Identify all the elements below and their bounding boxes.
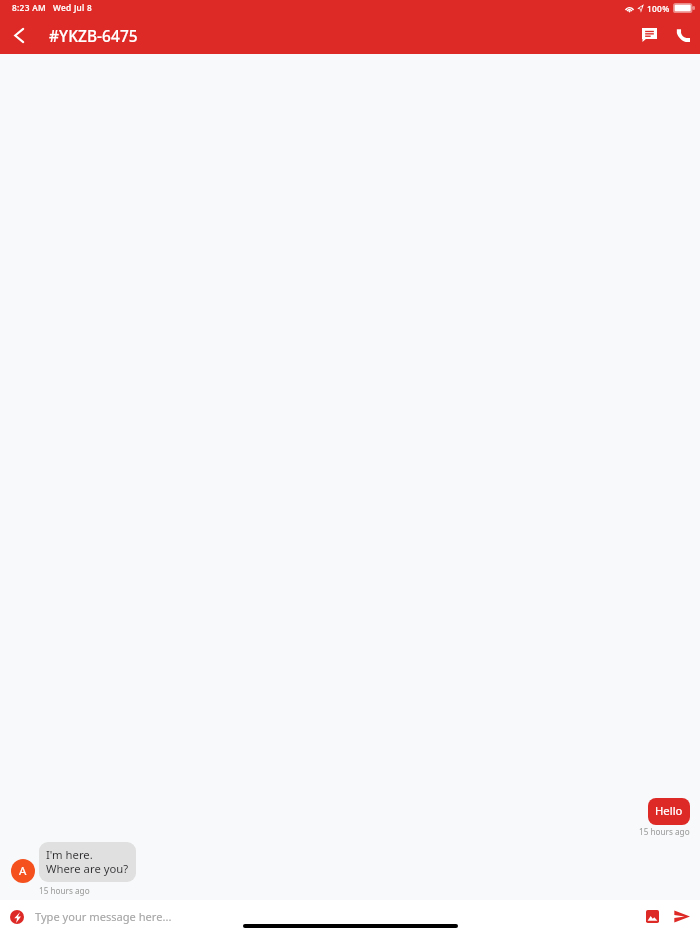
button[interactable]: I'm here. Where are you? — [39, 842, 136, 882]
button[interactable]: Call — [666, 16, 700, 54]
button[interactable]: Hello — [648, 798, 690, 825]
button[interactable]: Attach image — [639, 900, 665, 933]
button[interactable]: Back — [0, 16, 38, 54]
staticText: I'm here. Where are you? — [46, 848, 129, 876]
staticText: A — [19, 863, 27, 879]
button[interactable]: Messages — [632, 16, 666, 54]
staticText: Type your message here... — [35, 909, 172, 924]
button[interactable]: Send — [670, 900, 694, 933]
staticText: 15 hours ago — [639, 828, 690, 837]
staticText: 100% — [647, 3, 670, 14]
staticText: Hello — [655, 806, 683, 818]
button[interactable]: Quick actions — [10, 910, 24, 924]
staticText: 8:23 AM — [12, 2, 46, 13]
staticText: Wed Jul 8 — [53, 2, 93, 13]
staticText: 15 hours ago — [39, 887, 90, 896]
staticText: #YKZB-6475 — [49, 26, 138, 47]
